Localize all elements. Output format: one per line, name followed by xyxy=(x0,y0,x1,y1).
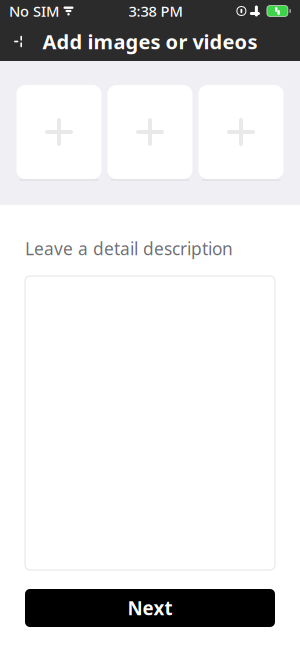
staticText: 3:38 PM xyxy=(128,1,182,21)
staticText: No SIM xyxy=(9,1,59,21)
staticText: Next xyxy=(127,596,172,620)
staticText: Add images or videos xyxy=(42,28,257,55)
button[interactable]: Next xyxy=(25,589,275,627)
button[interactable]: Add image or video xyxy=(16,85,101,181)
staticText: Leave a detail description xyxy=(25,237,233,260)
button[interactable]: Back xyxy=(0,22,36,61)
button[interactable]: Add image or video xyxy=(198,85,283,181)
button[interactable]: Add image or video xyxy=(107,85,192,181)
